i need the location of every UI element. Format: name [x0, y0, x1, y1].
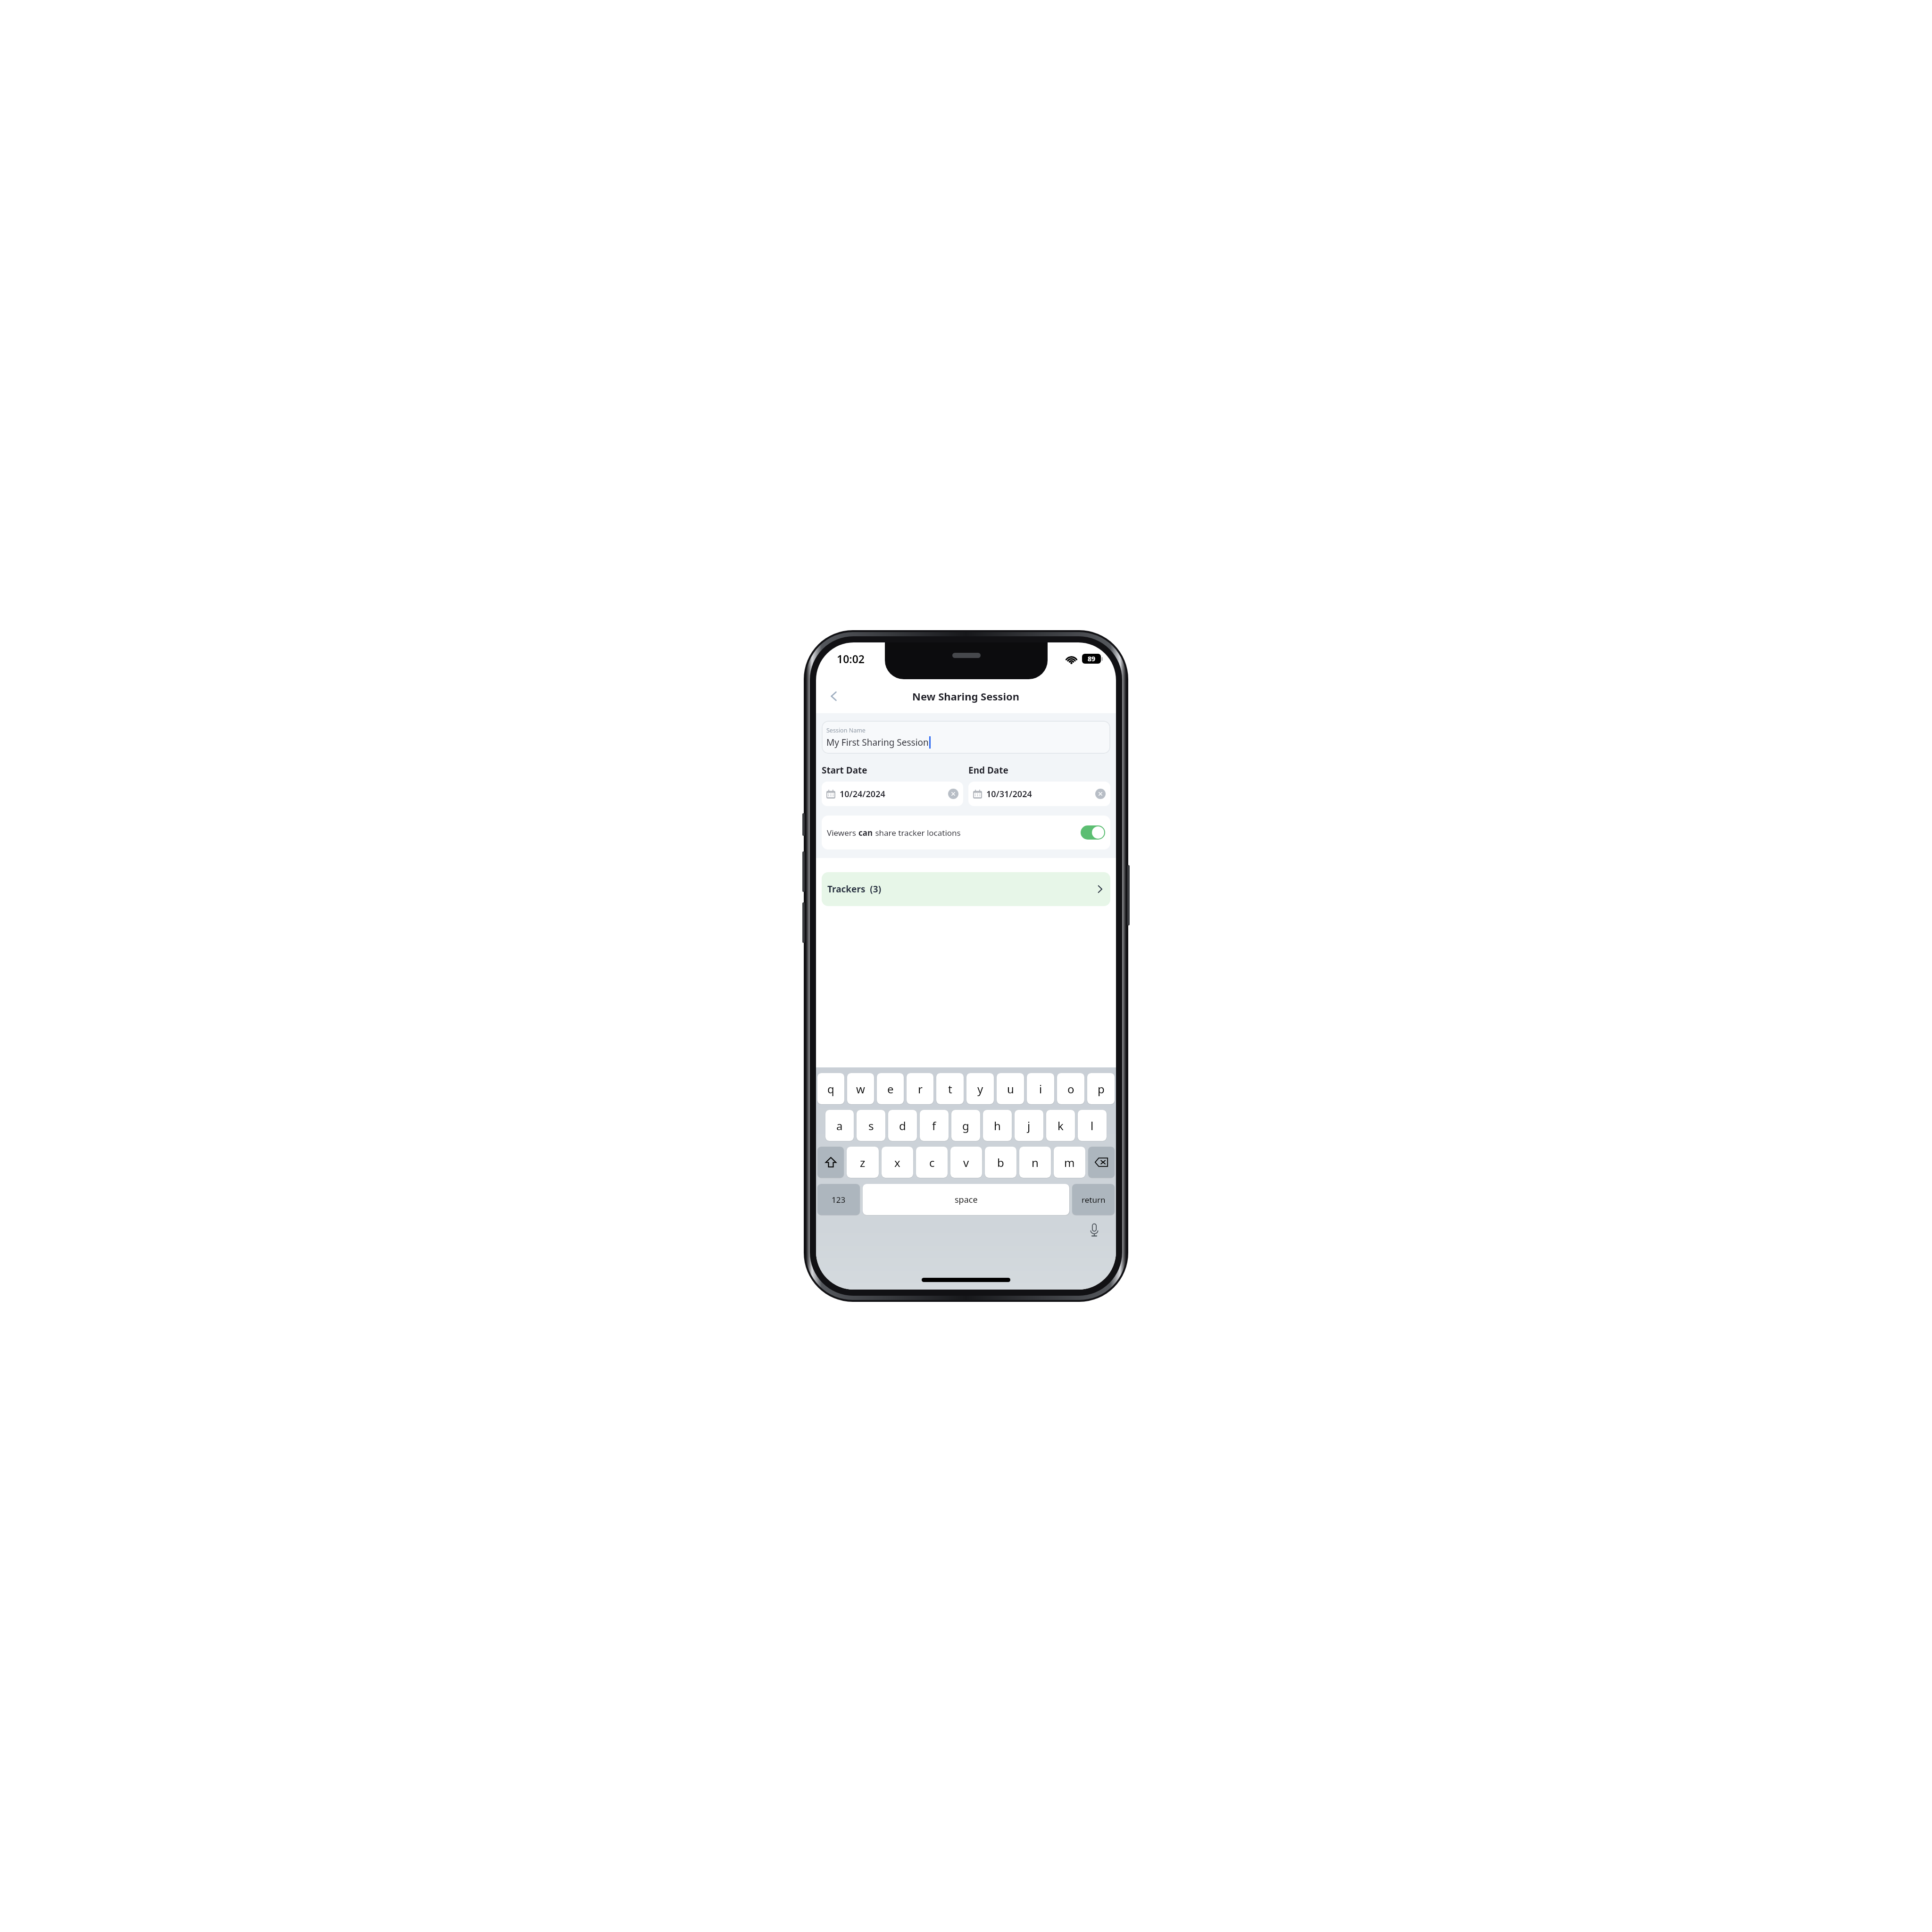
staticText: 89	[1088, 654, 1096, 663]
button[interactable]: Dictate	[1085, 1221, 1104, 1240]
staticText: d	[899, 1118, 906, 1133]
button[interactable]: a	[825, 1110, 854, 1141]
staticText: n	[1032, 1155, 1039, 1170]
button[interactable]: i	[1027, 1073, 1054, 1104]
staticText: h	[994, 1118, 1001, 1133]
staticText: c	[929, 1155, 935, 1170]
button[interactable]: r	[907, 1073, 933, 1104]
button[interactable]: n	[1019, 1147, 1051, 1178]
staticText: m	[1064, 1155, 1075, 1170]
staticText: New Sharing Session	[912, 689, 1020, 703]
button[interactable]: w	[847, 1073, 874, 1104]
button[interactable]: space	[863, 1184, 1069, 1215]
staticText: k	[1058, 1118, 1064, 1133]
staticText: y	[977, 1081, 983, 1097]
button[interactable]: Back	[821, 683, 847, 709]
staticText: share tracker locations	[873, 827, 961, 838]
button[interactable]: h	[983, 1110, 1012, 1141]
button[interactable]: e	[877, 1073, 904, 1104]
button[interactable]: d	[888, 1110, 917, 1141]
staticText: a	[836, 1118, 843, 1133]
staticText: g	[962, 1118, 969, 1133]
button[interactable]: m	[1054, 1147, 1085, 1178]
staticText: space	[955, 1194, 978, 1206]
staticText: 10:02	[837, 651, 865, 666]
staticText: r	[918, 1081, 923, 1097]
staticText: Session Name	[826, 726, 866, 734]
button[interactable]: Backspace	[1088, 1147, 1115, 1178]
staticText: z	[860, 1155, 866, 1170]
staticText: u	[1007, 1081, 1014, 1097]
button[interactable]: s	[857, 1110, 885, 1141]
staticText: can	[858, 827, 873, 838]
staticText: return	[1082, 1194, 1106, 1205]
button[interactable]: v	[950, 1147, 982, 1178]
button[interactable]: Trackers (3)	[822, 872, 1110, 906]
button[interactable]: c	[916, 1147, 948, 1178]
button[interactable]: 10/31/2024	[968, 782, 1110, 806]
staticText: Start Date	[822, 764, 867, 776]
button[interactable]: q	[817, 1073, 844, 1104]
staticText: End Date	[968, 764, 1008, 776]
button[interactable]: o	[1057, 1073, 1084, 1104]
button[interactable]: z	[847, 1147, 879, 1178]
button[interactable]: p	[1087, 1073, 1115, 1104]
staticText: My First Sharing Session	[826, 736, 929, 749]
staticText: q	[827, 1081, 834, 1097]
staticText: o	[1067, 1081, 1074, 1097]
button[interactable]: Clear date	[1095, 789, 1106, 799]
button[interactable]: t	[936, 1073, 964, 1104]
button[interactable]: u	[997, 1073, 1024, 1104]
staticText: 123	[832, 1194, 846, 1205]
staticText: l	[1091, 1118, 1094, 1133]
button[interactable]: Session Name	[822, 721, 1110, 754]
staticText: i	[1039, 1081, 1042, 1097]
button[interactable]: Shift	[817, 1147, 844, 1178]
staticText: f	[932, 1118, 936, 1133]
staticText: w	[856, 1081, 865, 1097]
button[interactable]: l	[1078, 1110, 1107, 1141]
button[interactable]: y	[966, 1073, 994, 1104]
staticText: 10/24/2024	[840, 788, 885, 800]
button[interactable]: Viewers	[822, 816, 1110, 849]
button[interactable]: j	[1015, 1110, 1043, 1141]
staticText: Viewers	[827, 827, 858, 838]
button[interactable]: k	[1046, 1110, 1075, 1141]
button[interactable]: g	[951, 1110, 980, 1141]
staticText: 10/31/2024	[986, 788, 1032, 800]
staticText: v	[963, 1155, 969, 1170]
button[interactable]: 10/24/2024	[822, 782, 963, 806]
staticText: Trackers (3)	[827, 883, 882, 895]
staticText: j	[1027, 1118, 1031, 1133]
button[interactable]: f	[920, 1110, 949, 1141]
button[interactable]: b	[985, 1147, 1016, 1178]
staticText: b	[997, 1155, 1004, 1170]
button[interactable]: x	[882, 1147, 913, 1178]
staticText: t	[948, 1081, 952, 1097]
button[interactable]: return	[1072, 1184, 1115, 1215]
staticText: p	[1098, 1081, 1105, 1097]
button[interactable]: 123	[817, 1184, 860, 1215]
button[interactable]: Clear date	[948, 789, 958, 799]
staticText: e	[887, 1081, 894, 1097]
staticText: x	[894, 1155, 900, 1170]
staticText: s	[868, 1118, 874, 1133]
